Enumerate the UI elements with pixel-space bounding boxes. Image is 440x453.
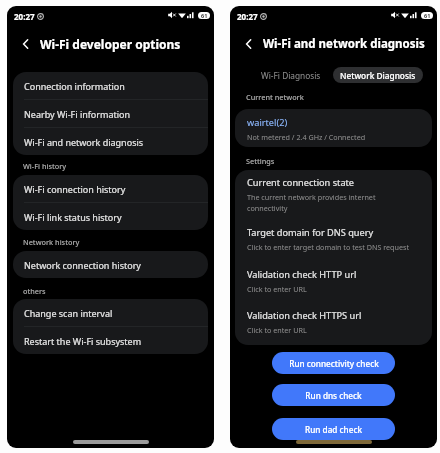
staticText: Wi-Fi and network diagnosis (263, 36, 425, 52)
staticText: Wi-Fi Diagnosis (261, 70, 321, 81)
button[interactable]: Network Diagnosis (333, 67, 423, 83)
staticText: 61 (424, 12, 431, 19)
staticText: Wi-Fi connection history (24, 183, 126, 195)
staticText: Wi-Fi link status history (24, 211, 122, 223)
staticText: Current connection state (247, 176, 355, 189)
staticText: The current network provides internet co… (247, 192, 376, 214)
button[interactable]: Nearby Wi-Fi information (13, 100, 208, 127)
staticText: Wi-Fi and network diagnosis (24, 136, 144, 148)
button[interactable]: Current connection state (235, 170, 432, 220)
staticText: Not metered / 2.4 GHz / Connected (247, 132, 366, 142)
staticText: Network history (23, 237, 80, 247)
staticText: Nearby Wi-Fi information (24, 108, 131, 120)
button[interactable]: Target domain for DNS query (235, 220, 432, 263)
staticText: 20:27 (14, 11, 35, 22)
button[interactable]: Run dad check (272, 418, 395, 440)
button[interactable]: Run connectivity check (272, 352, 395, 374)
staticText: Target domain for DNS query (247, 226, 374, 239)
staticText: Settings (246, 156, 275, 166)
staticText: Network Diagnosis (340, 70, 416, 81)
staticText: Validation check HTTP url (247, 268, 357, 281)
staticText: Run dns check (305, 390, 362, 401)
staticText: 20:27 (237, 11, 258, 22)
staticText: Run dad check (305, 424, 362, 435)
button[interactable]: Restart the Wi-Fi subsystem (13, 327, 208, 354)
button[interactable]: Change scan interval (13, 299, 208, 326)
staticText: Validation check HTTPS url (247, 309, 362, 322)
button[interactable]: wairtel(2) (235, 109, 432, 147)
button[interactable]: Back (18, 36, 34, 52)
staticText: Connection information (24, 80, 125, 92)
staticText: 61 (201, 12, 208, 19)
staticText: Current network (246, 92, 304, 102)
button[interactable]: Wi-Fi connection history (13, 175, 208, 202)
button[interactable]: Network connection history (13, 251, 208, 278)
button[interactable]: Wi-Fi and network diagnosis (13, 128, 208, 155)
staticText: Wi-Fi developer options (40, 36, 181, 52)
staticText: Run connectivity check (289, 358, 379, 369)
button[interactable]: Run dns check (272, 384, 395, 406)
staticText: Click to enter target domain to test DNS… (247, 242, 410, 252)
staticText: Restart the Wi-Fi subsystem (24, 335, 142, 347)
staticText: Wi-Fi history (23, 161, 67, 171)
staticText: others (23, 286, 46, 296)
button[interactable]: Back (241, 36, 257, 52)
button[interactable]: Wi-Fi link status history (13, 203, 208, 230)
staticText: Network connection history (24, 259, 141, 271)
staticText: Click to enter URL (247, 284, 307, 294)
staticText: wairtel(2) (247, 116, 288, 129)
button[interactable]: Validation check HTTPS url (235, 303, 432, 345)
button[interactable]: Connection information (13, 72, 208, 99)
staticText: Click to enter URL (247, 325, 307, 335)
staticText: Change scan interval (24, 307, 113, 319)
button[interactable]: Validation check HTTP url (235, 263, 432, 303)
button[interactable]: Wi-Fi Diagnosis (255, 67, 327, 83)
